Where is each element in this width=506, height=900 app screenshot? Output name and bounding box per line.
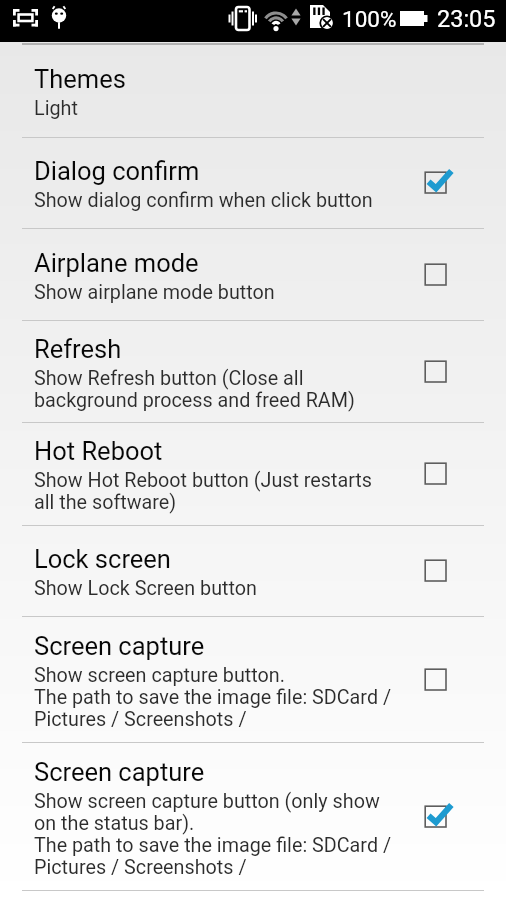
- staticText: Airplane mode: [34, 249, 199, 278]
- button[interactable]: Lock screen: [0, 526, 506, 616]
- button[interactable]: Themes: [0, 45, 506, 137]
- button[interactable]: Hot Reboot: [0, 423, 506, 525]
- button[interactable]: Screen capture: [0, 743, 506, 890]
- staticText: Show screen capture button. The path to …: [34, 664, 392, 730]
- button[interactable]: Refresh: [0, 321, 506, 422]
- staticText: Show Refresh button (Close all backgroun…: [34, 367, 355, 411]
- staticText: Show Hot Reboot button (Just restarts al…: [34, 469, 373, 513]
- button[interactable]: Disabled, Screen capture: [412, 656, 460, 704]
- staticText: Lock screen: [34, 545, 171, 574]
- staticText: Refresh: [34, 335, 122, 364]
- staticText: 23:05: [437, 5, 496, 33]
- staticText: 100%: [342, 6, 397, 32]
- staticText: Show screen capture button (only show on…: [34, 790, 392, 878]
- staticText: Light: [34, 97, 78, 119]
- staticText: Dialog confirm: [34, 157, 200, 186]
- button[interactable]: Enabled, Screen capture: [412, 793, 460, 841]
- button[interactable]: Dialog confirm: [0, 138, 506, 228]
- button[interactable]: Enabled, Dialog confirm: [412, 159, 460, 207]
- staticText: Themes: [34, 65, 126, 94]
- button[interactable]: Disabled, Airplane mode: [412, 251, 460, 299]
- staticText: Hot Reboot: [34, 437, 163, 466]
- staticText: Show airplane mode button: [34, 281, 275, 303]
- button[interactable]: Disabled, Refresh: [412, 348, 460, 396]
- button[interactable]: Disabled, Hot Reboot: [412, 450, 460, 498]
- button[interactable]: Airplane mode: [0, 229, 506, 320]
- button[interactable]: Screen capture: [0, 617, 506, 742]
- button[interactable]: Disabled, Lock screen: [412, 547, 460, 595]
- staticText: Show Lock Screen button: [34, 577, 257, 599]
- staticText: Screen capture: [34, 632, 205, 661]
- staticText: Show dialog confirm when click button: [34, 189, 373, 211]
- staticText: Screen capture: [34, 758, 205, 787]
